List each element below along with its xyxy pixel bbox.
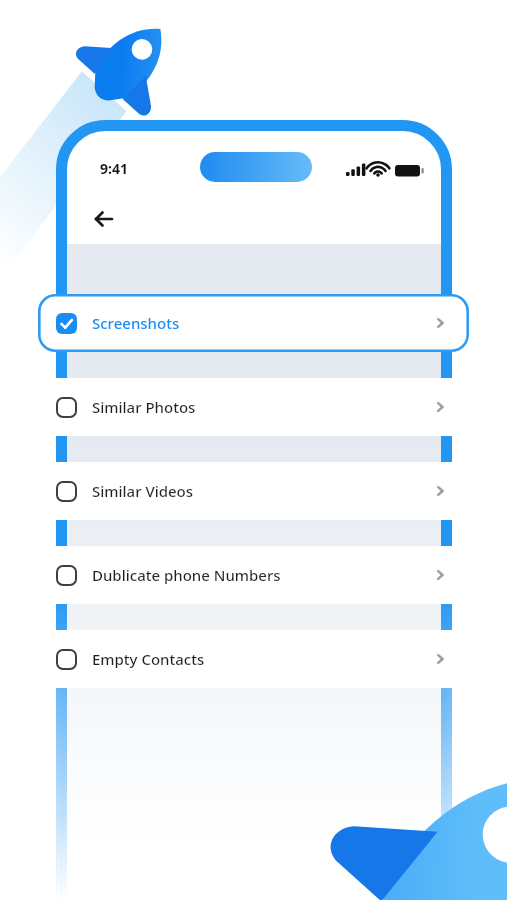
- staticText: Similar Videos: [92, 481, 194, 501]
- staticText: Empty Contacts: [92, 649, 205, 669]
- other: Unchecked: [56, 649, 77, 670]
- button[interactable]: Unchecked: [38, 630, 469, 688]
- button[interactable]: Unchecked: [38, 378, 469, 436]
- other: Unchecked: [56, 565, 77, 586]
- button[interactable]: Unchecked: [38, 462, 469, 520]
- other: Checked: [56, 313, 77, 334]
- staticText: Screenshots: [92, 313, 180, 333]
- staticText: Dublicate phone Numbers: [92, 565, 281, 585]
- other: Unchecked: [56, 481, 77, 502]
- other: Open Similar Videos: [431, 482, 449, 500]
- other: Open Dublicate phone Numbers: [431, 566, 449, 584]
- other: Unchecked: [56, 397, 77, 418]
- other: Open Screenshots: [431, 314, 449, 332]
- other: Open Similar Photos: [431, 398, 449, 416]
- button[interactable]: Unchecked: [38, 546, 469, 604]
- other: Open Empty Contacts: [431, 650, 449, 668]
- button[interactable]: Checked: [38, 294, 469, 352]
- staticText: Similar Photos: [92, 397, 196, 417]
- staticText: 9:41: [100, 159, 128, 178]
